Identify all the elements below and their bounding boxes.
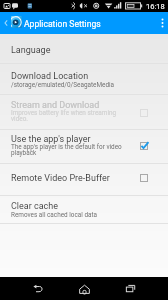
staticText: playback [11, 149, 37, 157]
staticText: Improves battery life when streaming [11, 109, 117, 117]
button[interactable]: Use the app's player [0, 130, 168, 164]
button[interactable]: Back [15, 277, 61, 300]
button[interactable]: Download Location [0, 64, 168, 95]
button[interactable]: Recent apps [107, 277, 153, 300]
staticText: Download Location [11, 71, 89, 82]
button[interactable]: Stream and Download [0, 95, 168, 130]
staticText: Application Settings [24, 19, 101, 29]
button[interactable]: Clear cache [0, 196, 168, 224]
staticText: Remote Video Pre-Buffer [11, 173, 110, 184]
staticText: 16:18 [146, 2, 165, 11]
staticText: /storage/emulated/0/SeagateMedia [11, 81, 115, 89]
staticText: Stream and Download [11, 100, 100, 111]
staticText: Language [11, 45, 51, 56]
staticText: Use the app's player [11, 134, 91, 145]
staticText: Removes all cached local data [11, 211, 98, 219]
button[interactable]: Home [61, 277, 107, 300]
button[interactable]: More options [156, 12, 168, 34]
staticText: Clear cache [11, 201, 59, 212]
staticText: The app's player is the default for vide… [11, 143, 122, 151]
staticText: video. [11, 115, 28, 123]
button[interactable]: Navigate up [0, 12, 11, 34]
button[interactable]: Language [0, 34, 168, 64]
button[interactable]: Remote Video Pre-Buffer [0, 164, 168, 196]
